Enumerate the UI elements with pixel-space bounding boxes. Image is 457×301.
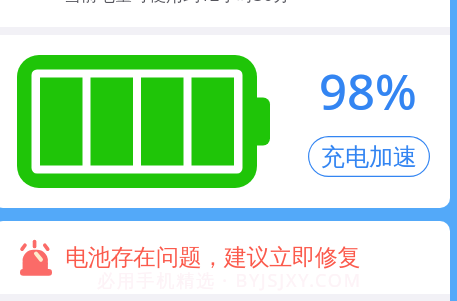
button[interactable]: Battery warning xyxy=(0,221,450,294)
button[interactable]: Battery level 98 percent xyxy=(17,55,270,188)
staticText: 必用手机精选 · BYJSJXY.COM xyxy=(97,268,362,293)
staticText: 电池存在问题，建议立即修复 xyxy=(65,243,361,272)
button[interactable]: 充电加速 xyxy=(308,136,430,177)
button[interactable]: 当前电量可使用约12小时30分 xyxy=(0,0,450,19)
staticText: 当前电量可使用约12小时30分 xyxy=(64,0,290,6)
other: Battery warning xyxy=(20,240,52,276)
staticText: 充电加速 xyxy=(321,142,417,172)
staticText: 98% xyxy=(319,58,417,125)
